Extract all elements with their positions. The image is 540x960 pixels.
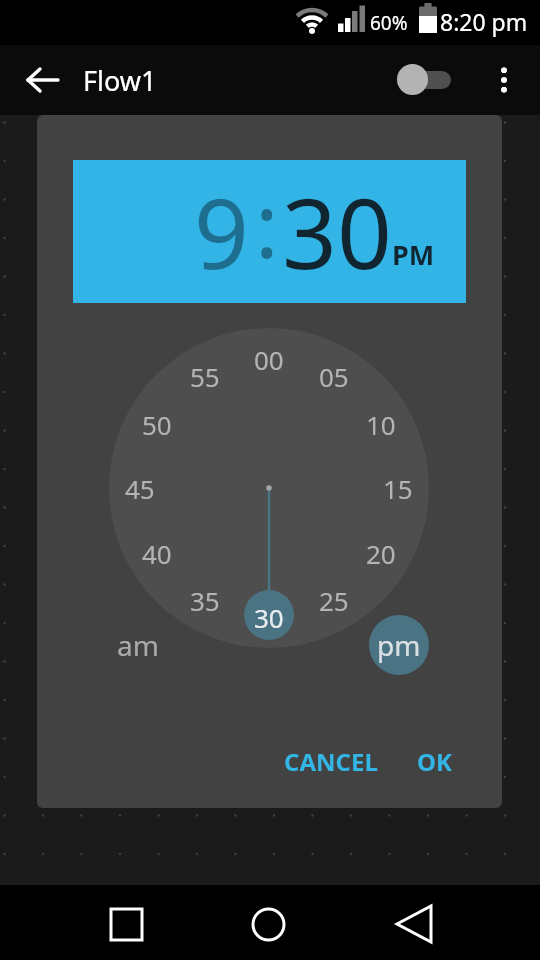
- staticText: 20: [366, 536, 396, 571]
- staticText: 00: [254, 342, 284, 377]
- button[interactable]: [392, 62, 458, 104]
- staticText: 35: [190, 583, 220, 618]
- staticText: pm: [377, 626, 421, 664]
- staticText: 10: [366, 407, 396, 442]
- staticText: am: [117, 626, 159, 664]
- staticText: 55: [190, 359, 220, 394]
- staticText: Flow1: [83, 62, 157, 99]
- staticText: 15: [383, 471, 413, 506]
- staticText: :: [255, 164, 279, 284]
- staticText: 25: [319, 583, 349, 618]
- staticText: 30: [254, 600, 284, 635]
- staticText: OK: [417, 745, 452, 778]
- staticText: 30: [282, 166, 392, 297]
- staticText: 50: [142, 407, 172, 442]
- staticText: 9: [194, 166, 249, 297]
- button[interactable]: OK: [397, 731, 472, 791]
- button[interactable]: [384, 894, 444, 954]
- staticText: 45: [125, 471, 155, 506]
- button[interactable]: [18, 55, 68, 105]
- staticText: 8:20 pm: [440, 6, 528, 37]
- staticText: 40: [142, 536, 172, 571]
- button[interactable]: CANCEL: [270, 731, 391, 791]
- button[interactable]: pm: [369, 615, 429, 675]
- button[interactable]: [96, 894, 156, 954]
- staticText: CANCEL: [284, 745, 378, 778]
- button[interactable]: [481, 56, 526, 104]
- staticText: PM: [392, 236, 435, 273]
- button[interactable]: [238, 894, 298, 954]
- staticText: 05: [319, 359, 349, 394]
- staticText: 60%: [370, 10, 408, 36]
- button[interactable]: am: [108, 615, 168, 675]
